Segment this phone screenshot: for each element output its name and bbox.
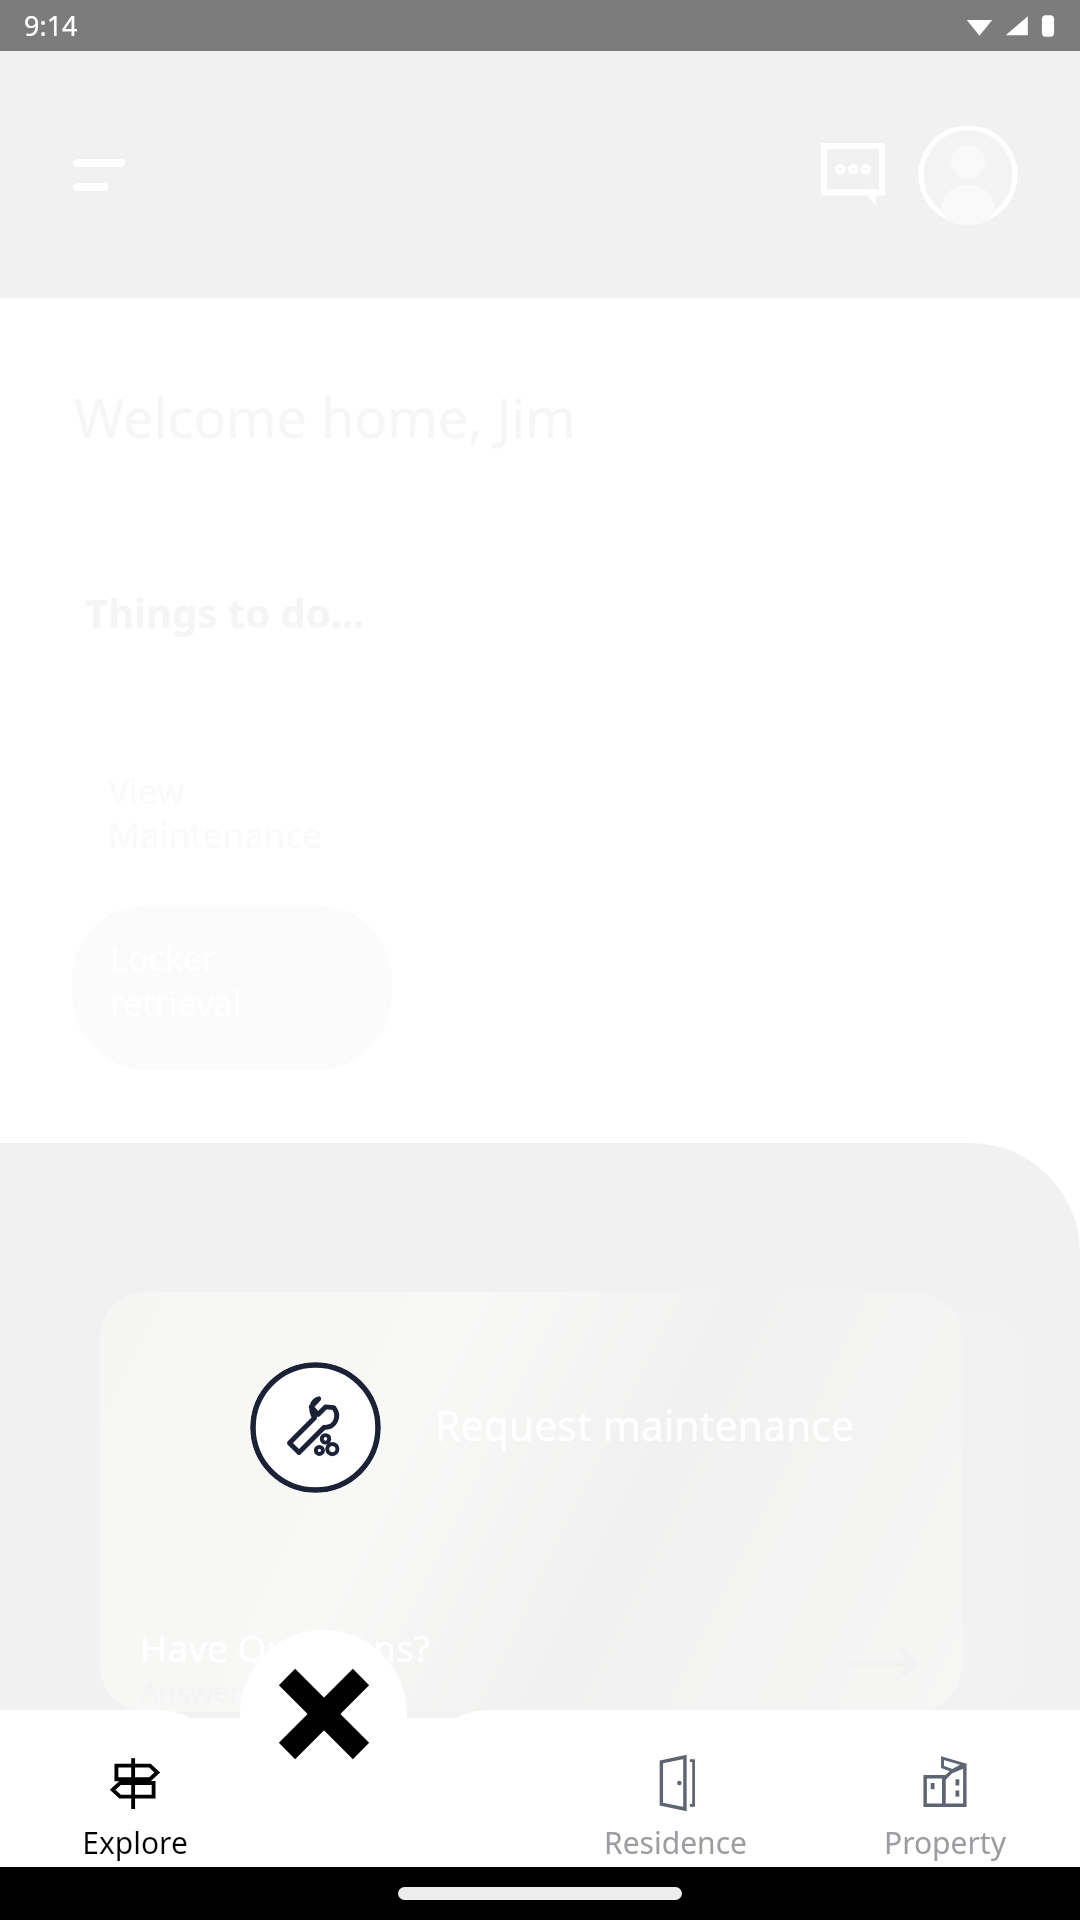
staticText: Welcome home, Jim: [74, 380, 576, 454]
staticText: Property: [884, 1822, 1006, 1863]
button[interactable]: Request maintenance: [100, 1292, 962, 1712]
staticText: Residence: [604, 1822, 747, 1863]
staticText: 9:14: [24, 7, 78, 44]
button[interactable]: Explore: [0, 1710, 270, 1867]
button[interactable]: Profile: [918, 125, 1018, 225]
button[interactable]: Request maintenance: [250, 1362, 381, 1493]
staticText: Things to do...: [85, 585, 365, 639]
button[interactable]: Messages: [810, 132, 896, 218]
button[interactable]: Residence: [540, 1710, 810, 1867]
button[interactable]: Property: [810, 1710, 1080, 1867]
staticText: Explore: [82, 1822, 188, 1863]
button[interactable]: Close: [240, 1630, 407, 1797]
button[interactable]: Menu: [60, 136, 138, 214]
staticText: Request maintenance: [435, 1397, 855, 1453]
staticText: Have Questions?: [140, 1622, 430, 1672]
